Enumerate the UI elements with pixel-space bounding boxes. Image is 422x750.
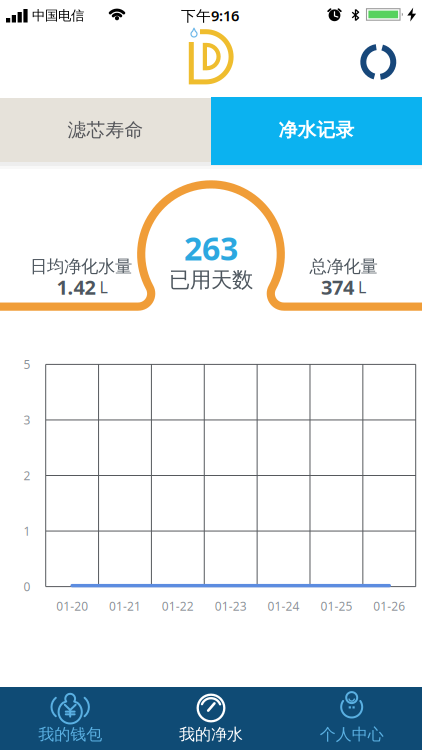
staticText: 1.42 (56, 274, 95, 300)
staticText: 263 (184, 227, 238, 269)
staticText: 374 (321, 274, 354, 300)
staticText: L (358, 276, 366, 298)
staticText: 中国电信 (32, 7, 84, 24)
staticText: 3 (23, 412, 30, 428)
staticText: 净水记录 (278, 118, 354, 141)
staticText: 下午9:16 (181, 6, 239, 25)
staticText: 0 (23, 579, 30, 594)
staticText: 我的钱包 (38, 725, 102, 744)
staticText: 已用天数 (169, 267, 253, 293)
staticText: 01-20 (56, 598, 88, 614)
staticText: 5 (23, 356, 30, 372)
staticText: 滤芯寿命 (67, 118, 143, 141)
staticText: 1 (23, 523, 30, 539)
staticText: 01-21 (109, 598, 141, 614)
staticText: 总净化量 (309, 256, 377, 277)
staticText: 01-25 (320, 598, 352, 614)
staticText: 01-26 (373, 598, 405, 614)
staticText: 我的净水 (179, 725, 243, 744)
staticText: 个人中心 (320, 725, 384, 744)
staticText: 日均净化水量 (30, 256, 132, 277)
staticText: 01-24 (268, 598, 300, 614)
staticText: L (99, 276, 107, 298)
staticText: 01-22 (162, 598, 194, 614)
staticText: 2 (23, 467, 30, 483)
staticText: 01-23 (215, 598, 247, 614)
